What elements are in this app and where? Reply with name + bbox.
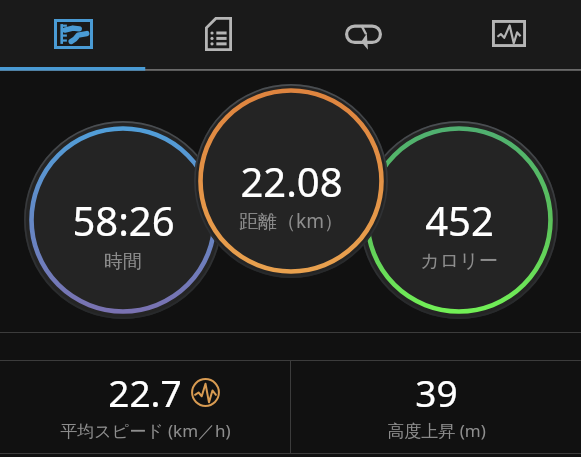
- button[interactable]: Map: [0, 0, 146, 67]
- staticText: 22.7: [108, 367, 182, 417]
- button[interactable]: Time: [24, 121, 222, 319]
- staticText: 高度上昇 (m): [387, 419, 486, 442]
- staticText: カロリー: [420, 249, 498, 273]
- button[interactable]: Charts: [436, 0, 581, 67]
- staticText: 452: [425, 193, 494, 247]
- button[interactable]: Laps: [291, 0, 436, 67]
- staticText: 平均スピード (km／h): [60, 419, 231, 442]
- staticText: 距離（km）: [239, 208, 343, 234]
- button[interactable]: Details: [146, 0, 291, 67]
- staticText: 時間: [104, 250, 142, 274]
- button[interactable]: Calories: [360, 121, 558, 319]
- button[interactable]: 22.7: [0, 361, 290, 453]
- staticText: 58:26: [72, 193, 175, 247]
- staticText: 22.08: [240, 154, 343, 208]
- button[interactable]: 39: [291, 361, 581, 453]
- button[interactable]: Distance: [194, 84, 388, 278]
- staticText: 39: [415, 367, 458, 417]
